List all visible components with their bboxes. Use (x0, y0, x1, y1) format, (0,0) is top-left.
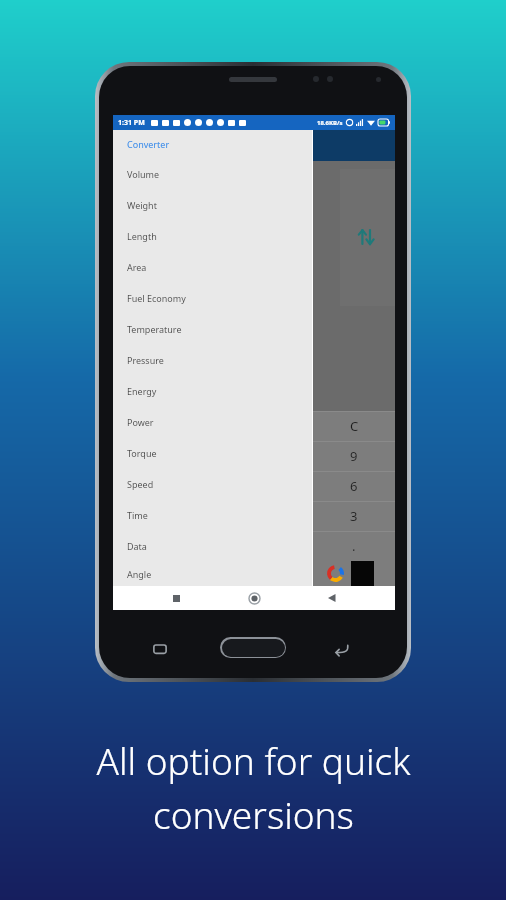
staticText: 9 (350, 447, 358, 465)
staticText: Time (127, 509, 148, 521)
button[interactable]: Torque (113, 437, 312, 468)
button[interactable]: Speed (113, 468, 312, 499)
staticText: Angle (127, 568, 152, 580)
staticText: Converter (127, 138, 170, 150)
button[interactable]: Weight (113, 189, 312, 220)
button[interactable]: Fuel Economy (113, 282, 312, 313)
staticText: Speed (127, 478, 154, 490)
staticText: 18.6KB/s (317, 119, 343, 127)
staticText: Area (127, 261, 147, 273)
staticText: Weight (127, 199, 157, 211)
other: Back (333, 640, 351, 658)
button[interactable]: Recent apps (161, 586, 191, 610)
staticText: 3 (350, 507, 358, 525)
staticText: Fuel Economy (127, 292, 186, 304)
staticText: Torque (127, 447, 157, 459)
staticText: C (350, 417, 359, 435)
button[interactable]: 6 (313, 471, 395, 501)
button[interactable]: Search (329, 567, 342, 580)
staticText: Length (127, 230, 157, 242)
other: Home (222, 639, 285, 657)
button[interactable]: Back (317, 586, 347, 610)
staticText: Energy (127, 385, 157, 397)
button[interactable]: Data (113, 530, 312, 561)
button[interactable]: Area (113, 251, 312, 282)
staticText: . (352, 537, 356, 555)
staticText: All option for quick (96, 735, 411, 785)
staticText: Pressure (127, 354, 164, 366)
staticText: 6 (350, 477, 358, 495)
button[interactable]: Angle (113, 561, 312, 586)
staticText: Temperature (127, 323, 182, 335)
other: Recents (151, 640, 169, 658)
staticText: 1:31 PM (118, 118, 145, 128)
button[interactable]: Pressure (113, 344, 312, 375)
staticText: Power (127, 416, 154, 428)
button[interactable]: Temperature (113, 313, 312, 344)
button[interactable]: 3 (313, 501, 395, 531)
staticText: Data (127, 540, 147, 552)
button[interactable]: C (313, 411, 395, 441)
staticText: conversions (153, 789, 354, 839)
button[interactable]: Power (113, 406, 312, 437)
button[interactable]: Energy (113, 375, 312, 406)
button[interactable]: Volume (113, 158, 312, 189)
button[interactable]: Swap units (356, 227, 376, 247)
button[interactable]: Converter (113, 130, 312, 158)
button[interactable]: Time (113, 499, 312, 530)
button[interactable]: Length (113, 220, 312, 251)
button[interactable]: 9 (313, 441, 395, 471)
staticText: Volume (127, 168, 160, 180)
button[interactable]: Home (239, 586, 269, 610)
